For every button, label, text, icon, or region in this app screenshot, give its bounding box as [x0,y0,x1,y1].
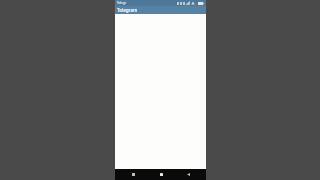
button[interactable]: Recent apps [124,169,142,180]
staticText: Telegram [117,7,138,13]
button[interactable]: Telegram [115,6,206,14]
button[interactable]: Back [179,169,197,180]
button[interactable]: Home [152,169,170,180]
staticText: Telegr [117,1,127,5]
